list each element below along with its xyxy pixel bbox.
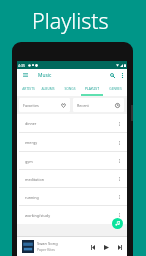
button[interactable]: energy bbox=[17, 133, 127, 152]
button[interactable]: SONGS bbox=[57, 81, 82, 94]
staticText: Favorites bbox=[23, 103, 39, 108]
button[interactable]: meditation bbox=[17, 170, 127, 188]
staticText: Recent bbox=[77, 103, 89, 108]
staticText: Paper Kites bbox=[37, 247, 55, 252]
button[interactable]: ARTISTS bbox=[17, 81, 39, 94]
staticText: Music bbox=[38, 72, 52, 79]
staticText: running bbox=[25, 195, 39, 200]
staticText: GENRES bbox=[109, 86, 122, 90]
button[interactable]: Next track bbox=[116, 241, 124, 253]
button[interactable]: PLAYLIST bbox=[82, 81, 102, 94]
button[interactable]: dinner bbox=[17, 114, 127, 133]
button[interactable]: More options bbox=[118, 69, 127, 81]
staticText: SONGS bbox=[64, 86, 76, 90]
staticText: energy bbox=[25, 140, 38, 145]
staticText: gym bbox=[25, 159, 33, 164]
staticText: meditation bbox=[25, 177, 44, 182]
staticText: dinner bbox=[25, 121, 37, 126]
button[interactable]: Search bbox=[107, 69, 118, 81]
button[interactable]: ALBUMS bbox=[39, 81, 57, 94]
staticText: working/study bbox=[25, 213, 51, 218]
button[interactable]: gym bbox=[17, 152, 127, 170]
button[interactable]: working/study bbox=[17, 206, 127, 224]
button[interactable]: Play bbox=[102, 241, 111, 253]
button[interactable]: running bbox=[17, 188, 127, 206]
button[interactable]: Recent bbox=[73, 98, 124, 112]
button[interactable]: Favorites bbox=[19, 98, 70, 112]
button[interactable]: Swan Song bbox=[17, 237, 127, 256]
staticText: 4:35 bbox=[18, 63, 26, 68]
button[interactable]: Navigation menu bbox=[19, 69, 31, 81]
button[interactable]: GENRES bbox=[102, 81, 128, 94]
staticText: ARTISTS bbox=[22, 86, 35, 90]
staticText: PLAYLIST bbox=[85, 86, 99, 90]
staticText: ALBUMS bbox=[41, 86, 55, 90]
button[interactable]: Shuffle play bbox=[112, 218, 123, 229]
staticText: Swan Song bbox=[37, 241, 58, 246]
staticText: Playlists bbox=[32, 6, 109, 35]
button[interactable]: Previous track bbox=[89, 241, 97, 253]
